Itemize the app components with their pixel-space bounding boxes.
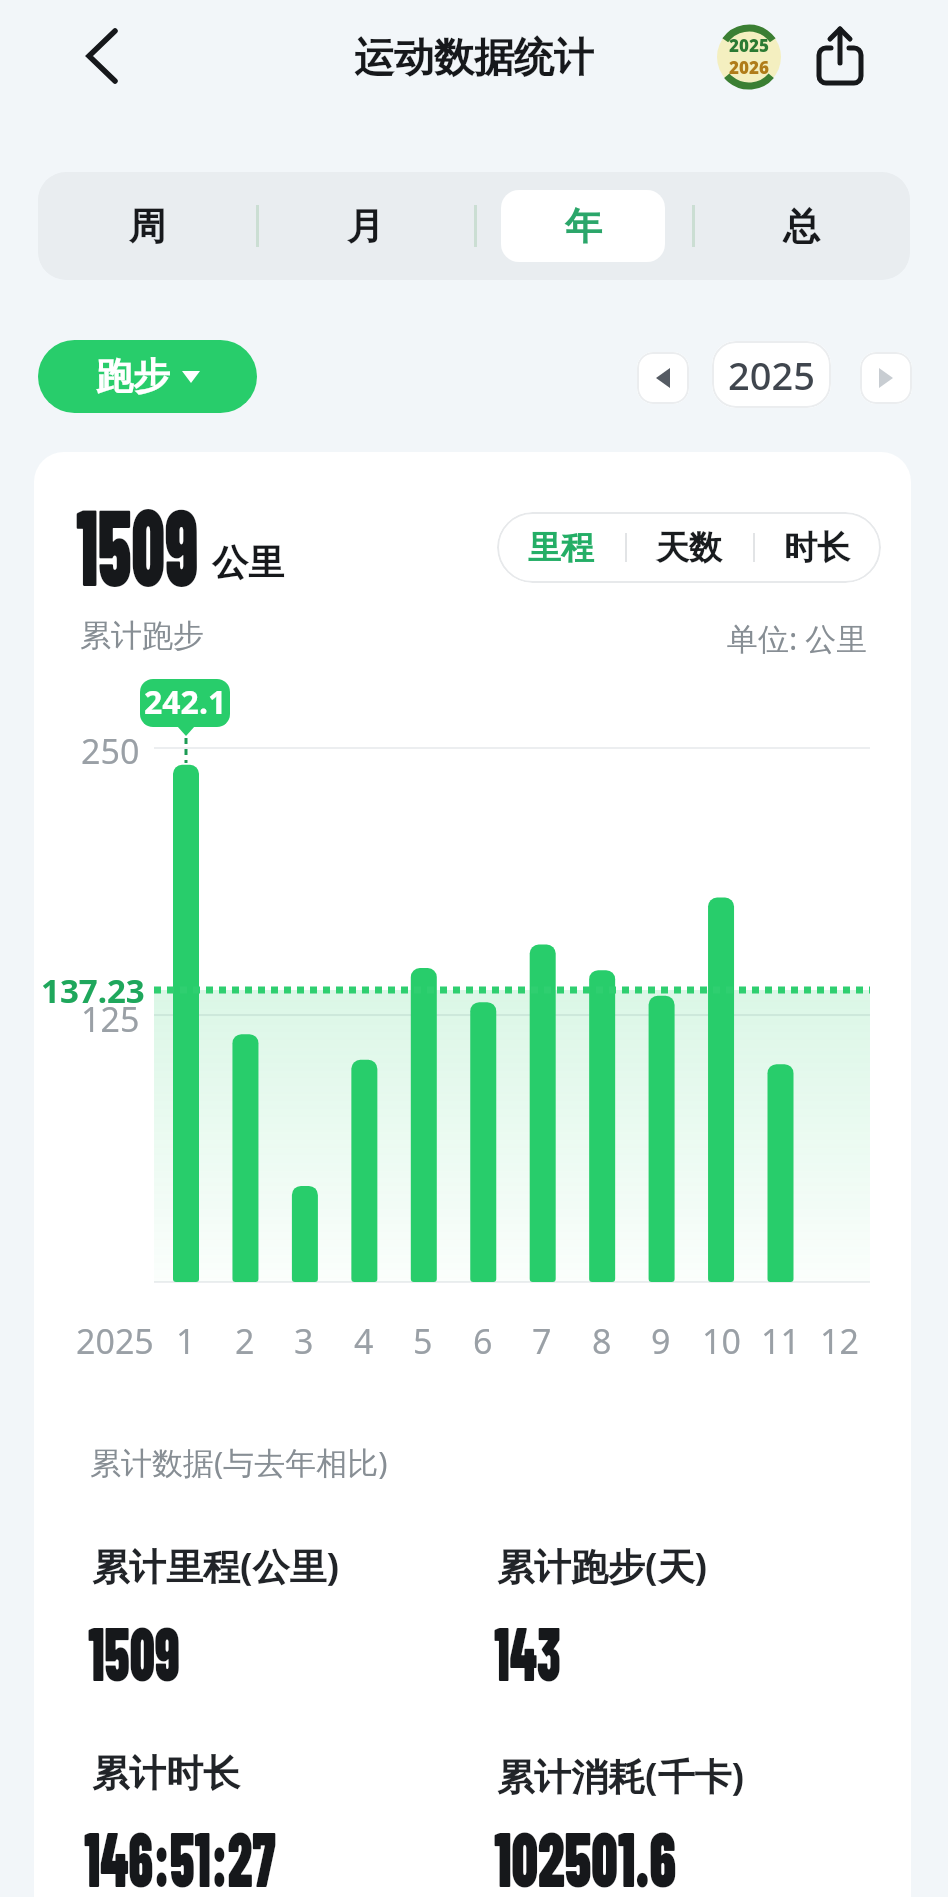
staticText: 跑步 [96,353,170,400]
staticText: 143 [494,1605,561,1696]
staticText: 累计跑步(天) [497,1540,708,1591]
staticText: 单位: 公里 [727,617,868,659]
staticText: 242.1 [144,680,227,724]
button[interactable]: 时长 [753,512,881,583]
staticText: 2025 [728,349,815,401]
staticText: 时长 [784,527,850,569]
staticText: 累计时长 [92,1750,240,1797]
button[interactable] [70,16,134,96]
staticText: 146:51:27 [84,1809,276,1897]
button[interactable] [805,18,875,96]
staticText: 2 [235,1318,255,1362]
button[interactable]: 天数 [625,512,753,583]
button[interactable]: 2025 [712,341,831,408]
staticText: 1 [176,1318,196,1362]
staticText: 年 [565,203,602,250]
staticText: 里程 [528,527,594,569]
staticText: 10 [702,1318,741,1362]
button[interactable]: 月 [256,172,474,280]
staticText: 5 [413,1318,433,1362]
staticText: 公里 [212,540,284,585]
staticText: 3 [294,1318,314,1362]
staticText: 6 [473,1318,493,1362]
staticText: 月 [347,203,384,250]
staticText: 累计数据(与去年相比) [90,1441,388,1483]
staticText: 累计里程(公里) [92,1540,340,1591]
staticText: 2025 [76,1318,154,1362]
staticText: 累计跑步 [80,616,204,655]
staticText: 2026 [729,56,769,79]
button[interactable]: 2025 [717,25,781,89]
staticText: 4 [354,1318,374,1362]
staticText: 1509 [88,1605,180,1696]
staticText: 9 [651,1318,671,1362]
button[interactable] [637,352,689,404]
staticText: 125 [81,996,140,1036]
staticText: 8 [592,1318,612,1362]
staticText: 1509 [76,478,199,608]
staticText: 运动数据统计 [354,32,594,82]
staticText: 2025 [729,34,769,57]
staticText: 137.23 [41,968,145,1008]
staticText: 总 [783,203,820,250]
staticText: 12 [820,1318,859,1362]
staticText: 250 [81,728,140,768]
button[interactable]: 周 [38,172,256,280]
button[interactable]: 里程 [497,512,625,583]
button[interactable]: 总 [692,172,910,280]
staticText: 102501.6 [494,1809,676,1897]
staticText: 7 [532,1318,552,1362]
button[interactable]: 跑步 [38,340,257,413]
button[interactable]: 年 [474,172,692,280]
staticText: 累计消耗(千卡) [497,1750,745,1801]
staticText: 天数 [656,527,722,569]
staticText: 周 [129,203,166,250]
staticText: 11 [761,1318,800,1362]
button[interactable] [860,352,912,404]
